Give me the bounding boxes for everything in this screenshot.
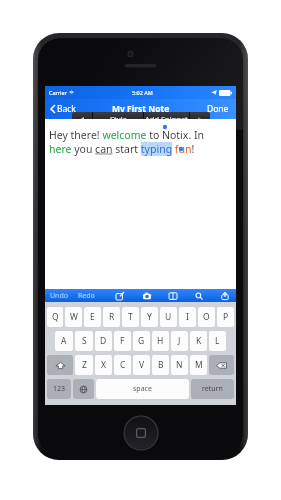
staticText: Q: [52, 311, 59, 323]
staticText: O: [203, 311, 210, 323]
button[interactable]: Style: [93, 112, 143, 126]
button[interactable]: S: [75, 331, 93, 351]
button[interactable]: Library: [166, 289, 180, 302]
button[interactable]: Shift: [47, 355, 73, 375]
button[interactable]: O: [198, 307, 215, 327]
button[interactable]: Redo: [73, 289, 100, 302]
staticText: G: [138, 335, 145, 347]
button[interactable]: E: [84, 307, 101, 327]
button[interactable]: R: [103, 307, 120, 327]
button[interactable]: Search: [192, 289, 206, 302]
staticText: T: [128, 311, 133, 323]
staticText: I: [186, 311, 189, 323]
staticText: Back: [57, 103, 76, 115]
button[interactable]: M: [190, 355, 207, 375]
staticText: H: [157, 335, 164, 347]
staticText: Carrier: [49, 89, 67, 96]
button[interactable]: V: [133, 355, 150, 375]
button[interactable]: U: [160, 307, 177, 327]
button[interactable]: 123: [47, 379, 71, 399]
button[interactable]: Q: [47, 307, 63, 327]
button[interactable]: P: [217, 307, 234, 327]
button[interactable]: F: [114, 331, 131, 351]
button[interactable]: H: [152, 331, 169, 351]
button[interactable]: Previous: [72, 112, 92, 126]
button[interactable]: B: [152, 355, 169, 375]
staticText: Redo: [78, 291, 95, 300]
button[interactable]: K: [190, 331, 207, 351]
button[interactable]: return: [191, 379, 234, 399]
staticText: P: [223, 311, 229, 323]
staticText: F: [120, 335, 125, 347]
button[interactable]: Add Snippet: [144, 112, 189, 126]
staticText: V: [139, 359, 145, 371]
staticText: Hey there! welcome to Notix. In here you…: [49, 128, 204, 156]
button[interactable]: Back: [49, 101, 78, 117]
button[interactable]: Done: [204, 100, 232, 118]
staticText: Y: [147, 311, 152, 323]
staticText: 123: [53, 384, 66, 394]
button[interactable]: Camera: [140, 289, 154, 302]
staticText: Add Snippet: [145, 114, 188, 124]
button[interactable]: C: [114, 355, 131, 375]
staticText: L: [215, 335, 220, 347]
staticText: return: [202, 384, 223, 394]
button[interactable]: Y: [141, 307, 158, 327]
staticText: 5:02 AM: [132, 89, 153, 96]
staticText: B: [158, 359, 164, 371]
button[interactable]: D: [95, 331, 112, 351]
staticText: J: [178, 335, 181, 347]
staticText: E: [90, 311, 95, 323]
staticText: Style: [110, 114, 127, 124]
staticText: My First Note: [112, 103, 170, 115]
staticText: X: [101, 359, 106, 371]
button[interactable]: Next: [190, 112, 210, 126]
button[interactable]: Undo: [45, 289, 73, 302]
button[interactable]: I: [179, 307, 196, 327]
staticText: R: [109, 311, 115, 323]
staticText: A: [61, 335, 67, 347]
staticText: U: [165, 311, 172, 323]
button[interactable]: A: [55, 331, 73, 351]
button[interactable]: T: [122, 307, 139, 327]
staticText: D: [100, 335, 107, 347]
button[interactable]: W: [65, 307, 82, 327]
staticText: Undo: [50, 291, 68, 300]
button[interactable]: L: [209, 331, 226, 351]
button[interactable]: Z: [75, 355, 93, 375]
staticText: M: [195, 359, 203, 371]
button[interactable]: Emoji: [73, 379, 94, 399]
button[interactable]: space: [96, 379, 189, 399]
staticText: S: [82, 335, 87, 347]
button[interactable]: Backspace: [209, 355, 234, 375]
button[interactable]: J: [171, 331, 188, 351]
staticText: Done: [207, 103, 229, 115]
button[interactable]: Share: [218, 289, 232, 302]
staticText: W: [70, 311, 78, 323]
button[interactable]: N: [171, 355, 188, 375]
staticText: C: [120, 359, 126, 371]
button[interactable]: X: [95, 355, 112, 375]
staticText: space: [133, 384, 152, 394]
button[interactable]: G: [133, 331, 150, 351]
staticText: K: [196, 335, 202, 347]
staticText: N: [176, 359, 183, 371]
staticText: Z: [82, 359, 87, 371]
button[interactable]: Compose: [113, 289, 127, 302]
